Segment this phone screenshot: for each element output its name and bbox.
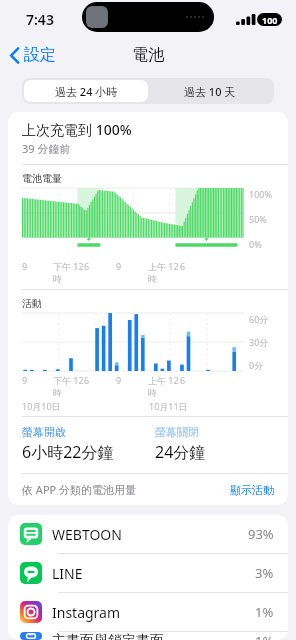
staticText: 10月11日 <box>149 400 188 412</box>
staticText: LINE <box>52 564 83 583</box>
staticText: 電池 <box>132 45 164 65</box>
staticText: 9 <box>22 374 28 386</box>
staticText: 主畫面與鎖定畫面 <box>52 632 164 640</box>
staticText: Instagram <box>52 603 121 622</box>
staticText: 1% <box>255 603 274 621</box>
button[interactable]: 過去 24 小時 <box>24 80 148 102</box>
staticText: 50% <box>249 213 267 225</box>
staticText: 100% <box>249 188 272 200</box>
staticText: 3% <box>255 564 274 582</box>
staticText: 60分 <box>249 313 269 325</box>
staticText: 9 <box>116 260 122 272</box>
staticText: 電池電量 <box>22 172 62 185</box>
staticText: 6 <box>180 260 186 272</box>
staticText: 0分 <box>249 359 264 371</box>
button[interactable]: Instagram <box>8 593 288 632</box>
staticText: 9 <box>116 374 122 386</box>
staticText: 上午 12時 <box>148 374 180 399</box>
button[interactable]: 顯示活動 <box>230 483 274 497</box>
button[interactable]: 主畫面與鎖定畫面 <box>8 632 288 640</box>
button[interactable]: LINE <box>8 554 288 593</box>
staticText: 設定 <box>24 45 56 65</box>
staticText: 6 <box>84 374 90 386</box>
staticText: 30分 <box>249 336 269 348</box>
staticText: 過去 24 小時 <box>55 84 118 99</box>
staticText: 依 APP 分類的電池用量 <box>22 482 137 497</box>
staticText: 上午 12時 <box>148 260 180 285</box>
staticText: 24分鐘 <box>155 441 206 463</box>
button[interactable]: 設定 <box>6 41 60 69</box>
staticText: 活動 <box>22 297 42 310</box>
staticText: 6小時22分鐘 <box>22 441 114 463</box>
staticText: 上次充電到 100% <box>22 120 132 139</box>
staticText: 93% <box>248 525 274 543</box>
staticText: 顯示活動 <box>230 483 274 497</box>
staticText: 0% <box>249 238 262 250</box>
staticText: 6 <box>180 374 186 386</box>
staticText: 螢幕開啟 <box>22 425 66 439</box>
staticText: 10月10日 <box>22 400 61 412</box>
staticText: 6 <box>84 260 90 272</box>
staticText: 7:43 <box>26 10 54 29</box>
staticText: 39 分鐘前 <box>22 141 71 156</box>
staticText: 過去 10 天 <box>184 84 236 99</box>
button[interactable]: WEBTOON <box>8 515 288 554</box>
staticText: 1% <box>255 632 274 640</box>
staticText: 下午 12時 <box>53 374 84 399</box>
staticText: 100 <box>262 14 278 26</box>
staticText: 下午 12時 <box>53 260 84 285</box>
staticText: 螢幕關閉 <box>155 425 199 439</box>
staticText: 9 <box>22 260 28 272</box>
button[interactable]: 過去 10 天 <box>148 80 272 102</box>
staticText: WEBTOON <box>52 525 122 544</box>
